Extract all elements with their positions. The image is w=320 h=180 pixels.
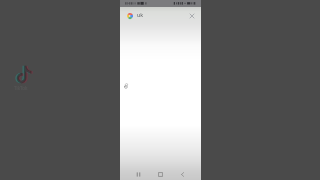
button[interactable]: Back	[175, 167, 189, 180]
button[interactable]: Close	[186, 10, 197, 21]
button[interactable]: Recent apps	[131, 167, 145, 180]
staticText: uk	[137, 12, 143, 19]
button[interactable]: Google	[124, 10, 135, 21]
button[interactable]: Home	[153, 167, 167, 180]
